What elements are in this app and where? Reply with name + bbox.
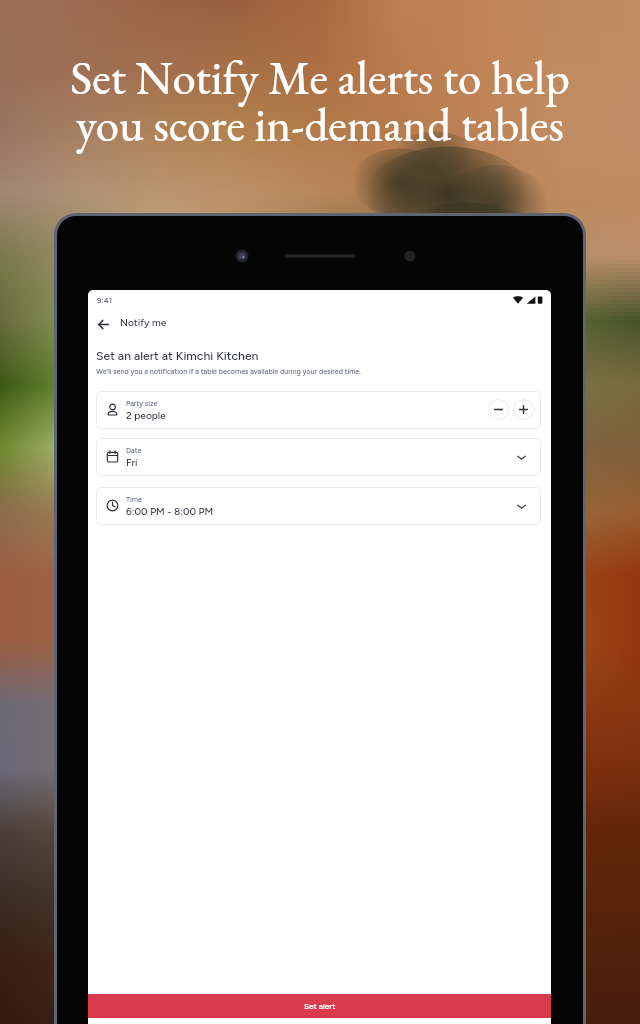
button[interactable]: Back — [92, 313, 114, 335]
button[interactable]: Open Time picker — [515, 500, 528, 513]
staticText: Set an alert at Kimchi Kitchen — [96, 348, 259, 363]
staticText: Date — [126, 446, 142, 455]
staticText: Fri — [126, 456, 138, 468]
button[interactable]: Open Date picker — [515, 451, 528, 464]
button[interactable]: Increase party size — [513, 399, 534, 420]
staticText: Party size — [126, 399, 158, 408]
button[interactable]: Date — [96, 438, 541, 476]
staticText: Set Notify Me alerts to help you score i… — [70, 47, 570, 155]
staticText: Notify me — [120, 316, 167, 328]
button[interactable]: Party size — [96, 391, 541, 429]
staticText: 2 people — [126, 409, 166, 421]
button[interactable]: Decrease party size — [488, 399, 509, 420]
staticText: 9:41 — [97, 295, 113, 305]
staticText: Time — [126, 495, 142, 504]
staticText: We'll send you a notification if a table… — [96, 367, 361, 376]
button[interactable]: Set alert — [88, 994, 551, 1018]
staticText: Set alert — [304, 1001, 336, 1011]
button[interactable]: Time — [96, 487, 541, 525]
staticText: 6:00 PM - 8:00 PM — [126, 505, 214, 517]
